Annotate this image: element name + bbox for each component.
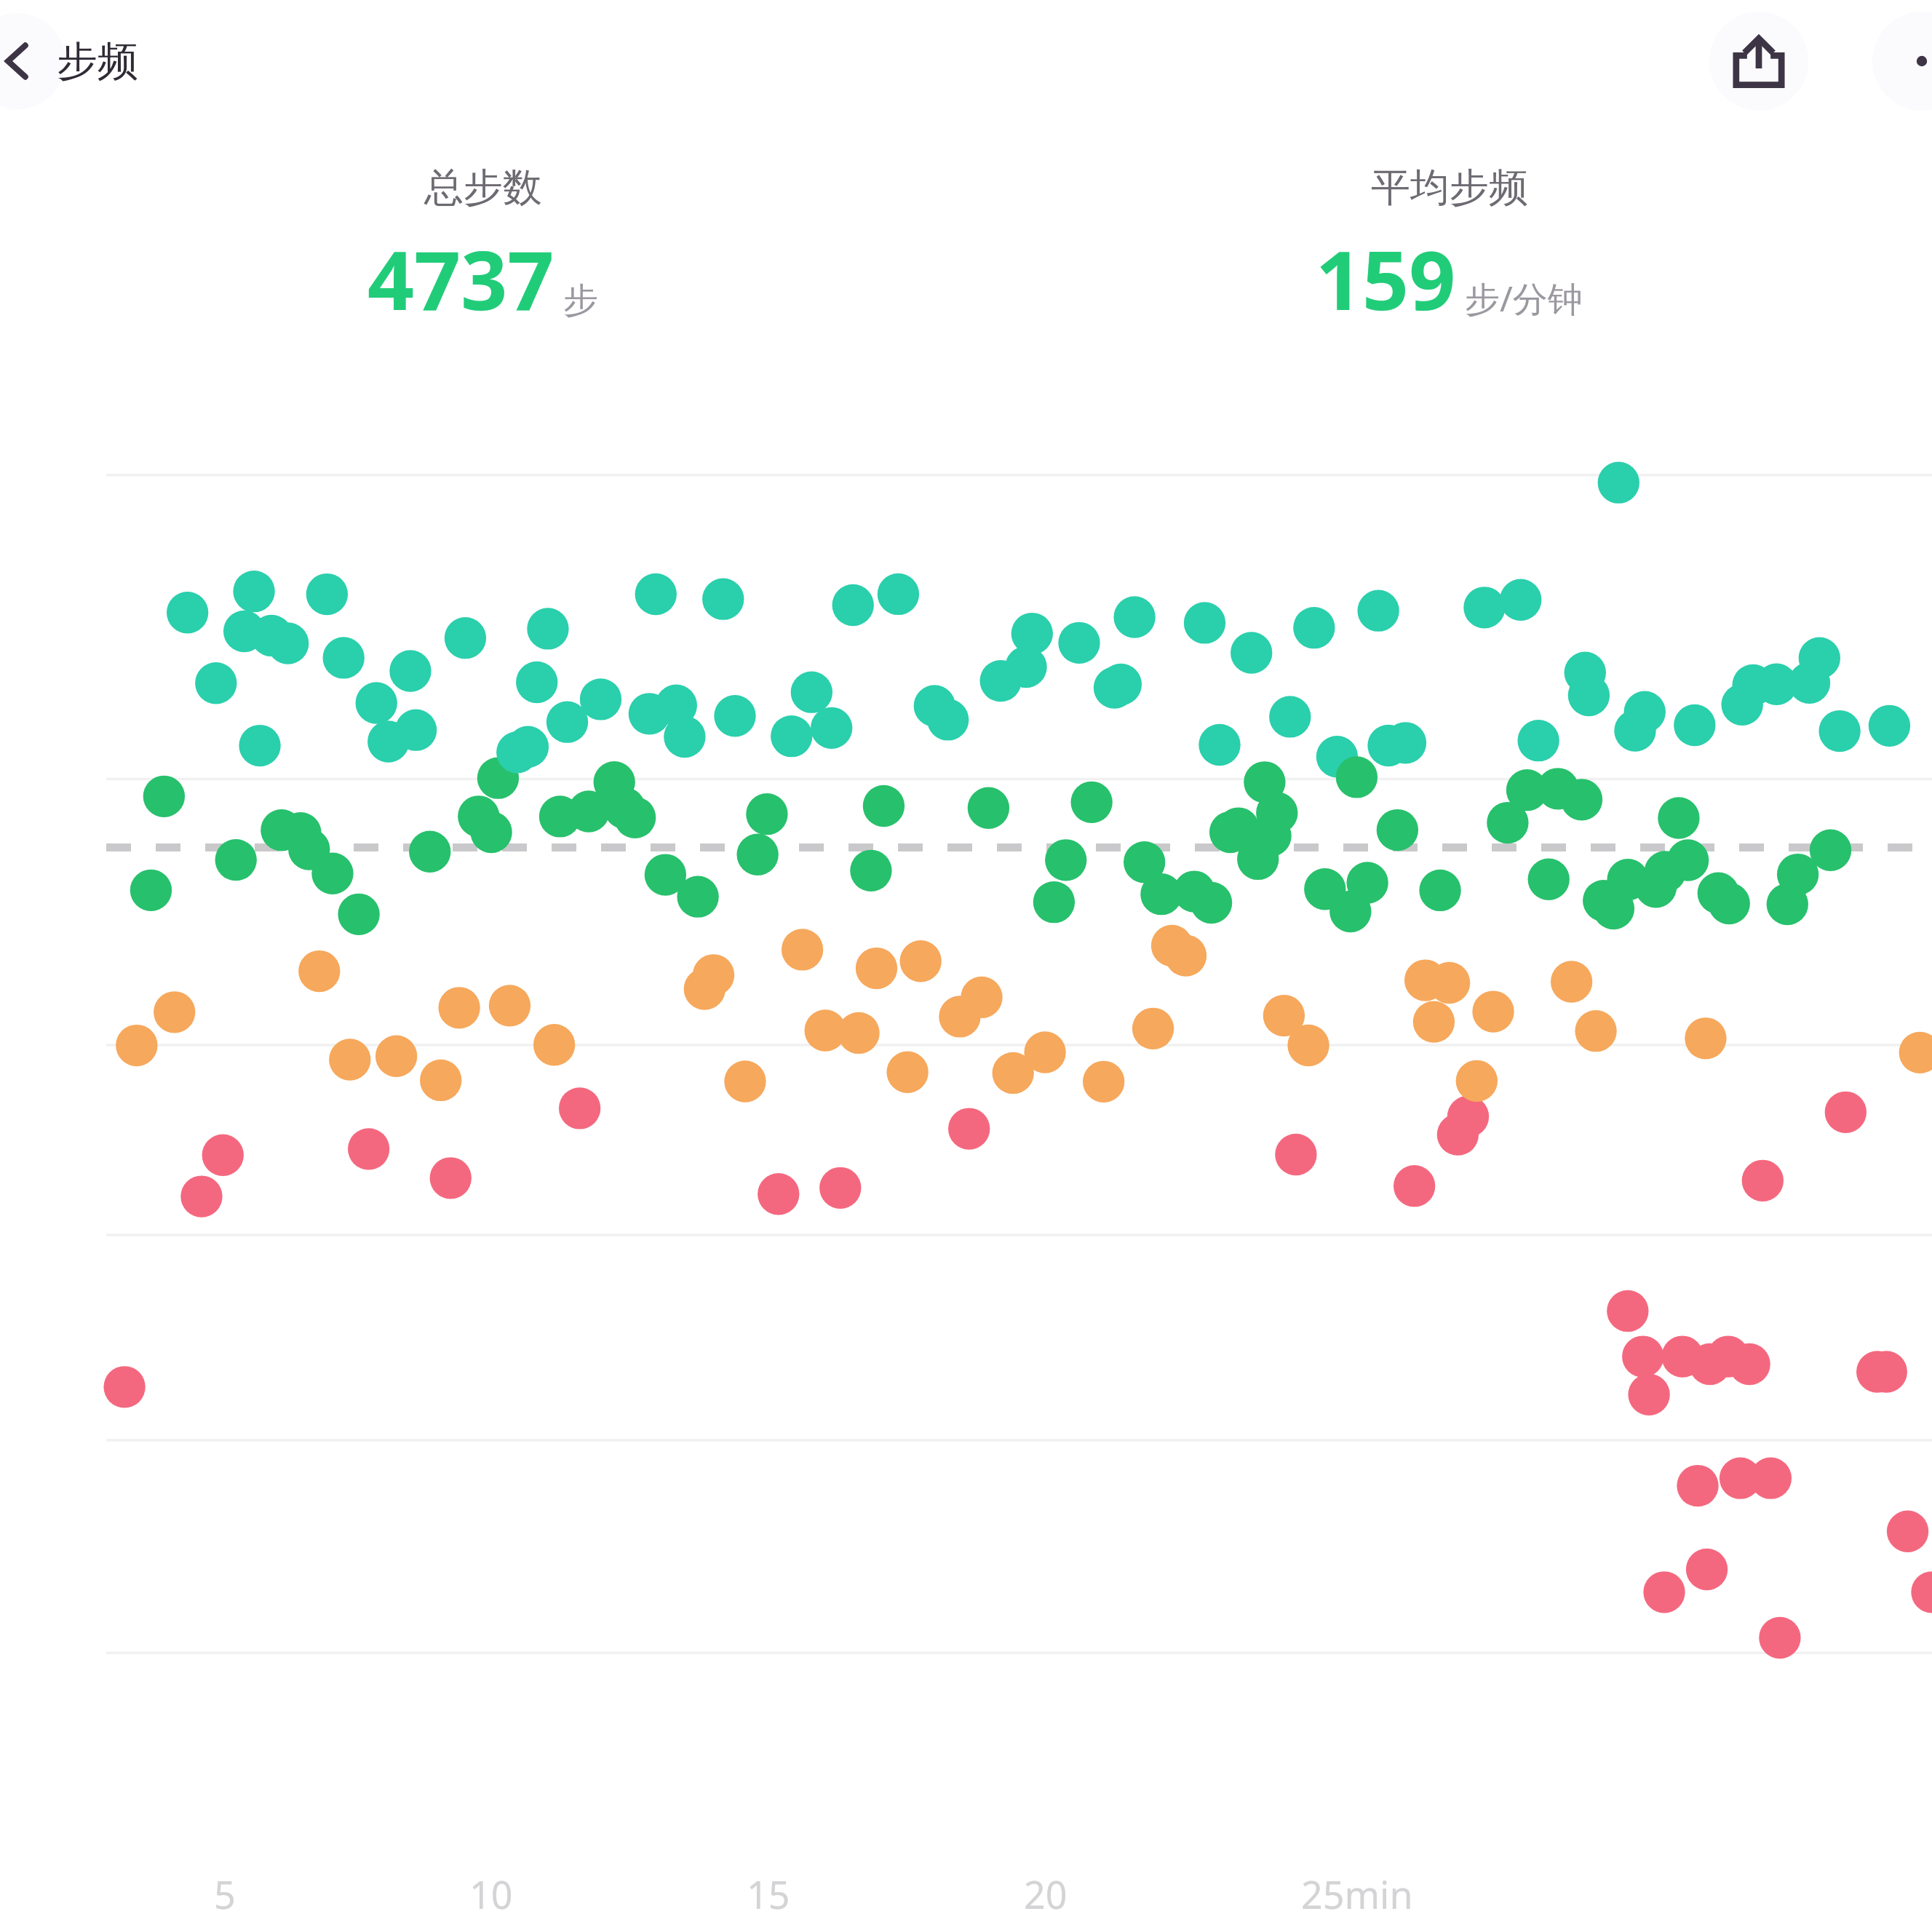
- staticText: 总步数: [424, 163, 542, 213]
- staticText: 20: [1024, 1868, 1068, 1920]
- staticText: 步频: [57, 36, 138, 87]
- button[interactable]: More options: [1872, 12, 1932, 111]
- staticText: 15: [747, 1868, 790, 1920]
- staticText: 5: [214, 1868, 236, 1920]
- staticText: 10: [469, 1868, 513, 1920]
- staticText: 步: [563, 279, 598, 322]
- button[interactable]: Back: [0, 13, 65, 109]
- staticText: 159: [1316, 223, 1456, 334]
- staticText: 25min: [1301, 1868, 1413, 1920]
- staticText: 步/分钟: [1465, 274, 1583, 322]
- button[interactable]: Share: [1709, 12, 1808, 111]
- staticText: 平均步频: [1371, 163, 1528, 213]
- staticText: 4737: [367, 223, 554, 334]
